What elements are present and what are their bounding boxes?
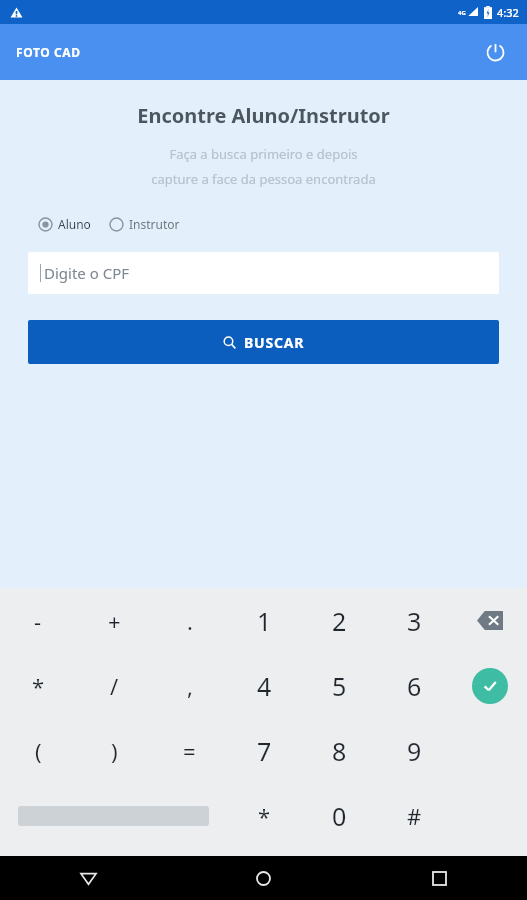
button[interactable]: * bbox=[0, 653, 76, 718]
button[interactable]: # bbox=[377, 783, 452, 848]
button[interactable]: 0 bbox=[302, 783, 377, 848]
staticText: FOTO CAD bbox=[16, 44, 81, 60]
button[interactable]: . bbox=[152, 588, 227, 653]
staticText: + bbox=[108, 606, 121, 636]
button[interactable]: / bbox=[76, 653, 152, 718]
staticText: / bbox=[110, 671, 119, 701]
staticText: # bbox=[407, 801, 422, 831]
staticText: Faça a busca primeiro e depois bbox=[169, 145, 358, 163]
staticText: 2 bbox=[332, 604, 347, 638]
button[interactable]: 3 bbox=[377, 588, 452, 653]
button[interactable]: ( bbox=[0, 718, 76, 783]
staticText: . bbox=[187, 606, 193, 636]
button[interactable]: Instrutor bbox=[105, 212, 184, 236]
staticText: , bbox=[187, 671, 193, 701]
button[interactable]: 4 bbox=[227, 653, 302, 718]
button[interactable]: 5 bbox=[302, 653, 377, 718]
staticText: 6 bbox=[407, 669, 422, 703]
button[interactable]: ) bbox=[76, 718, 152, 783]
staticText: 1 bbox=[257, 604, 272, 638]
staticText: 3 bbox=[407, 604, 422, 638]
staticText: - bbox=[34, 606, 42, 636]
button[interactable]: BUSCAR bbox=[28, 320, 499, 364]
button[interactable]: Apagar bbox=[452, 588, 527, 653]
staticText: 9 bbox=[407, 734, 422, 768]
button[interactable]: 6 bbox=[377, 653, 452, 718]
staticText: 7 bbox=[257, 734, 272, 768]
button[interactable]: 2 bbox=[302, 588, 377, 653]
staticText: 5 bbox=[332, 669, 347, 703]
staticText: Instrutor bbox=[129, 216, 180, 232]
staticText: BUSCAR bbox=[244, 333, 305, 352]
button[interactable]: 9 bbox=[377, 718, 452, 783]
staticText: 4:32 bbox=[497, 5, 519, 20]
button[interactable]: Digite o CPF bbox=[28, 252, 499, 294]
staticText: Encontre Aluno/Instrutor bbox=[137, 102, 390, 129]
staticText: ) bbox=[111, 736, 118, 766]
button[interactable]: Voltar bbox=[64, 856, 112, 900]
button[interactable]: - bbox=[0, 588, 76, 653]
staticText: * bbox=[32, 671, 45, 701]
button[interactable]: Confirmar bbox=[452, 653, 527, 718]
staticText: 8 bbox=[332, 734, 347, 768]
button[interactable]: Início bbox=[239, 856, 287, 900]
staticText: Digite o CPF bbox=[44, 263, 130, 283]
staticText: 4G bbox=[458, 9, 466, 17]
staticText: capture a face da pessoa encontrada bbox=[151, 170, 376, 188]
button[interactable]: 7 bbox=[227, 718, 302, 783]
button[interactable]: Aluno bbox=[34, 212, 95, 236]
button[interactable]: 8 bbox=[302, 718, 377, 783]
button[interactable]: Sair bbox=[475, 32, 515, 72]
staticText: = bbox=[183, 736, 196, 766]
button[interactable]: 1 bbox=[227, 588, 302, 653]
button[interactable]: + bbox=[76, 588, 152, 653]
button[interactable]: Recentes bbox=[415, 856, 463, 900]
button[interactable]: = bbox=[152, 718, 227, 783]
staticText: ( bbox=[35, 736, 42, 766]
staticText: 4 bbox=[257, 669, 272, 703]
button[interactable]: * bbox=[227, 783, 302, 848]
button[interactable]: Espaço bbox=[0, 783, 227, 848]
staticText: * bbox=[258, 801, 271, 831]
button[interactable]: , bbox=[152, 653, 227, 718]
staticText: 0 bbox=[332, 799, 347, 833]
staticText: Aluno bbox=[58, 216, 91, 232]
